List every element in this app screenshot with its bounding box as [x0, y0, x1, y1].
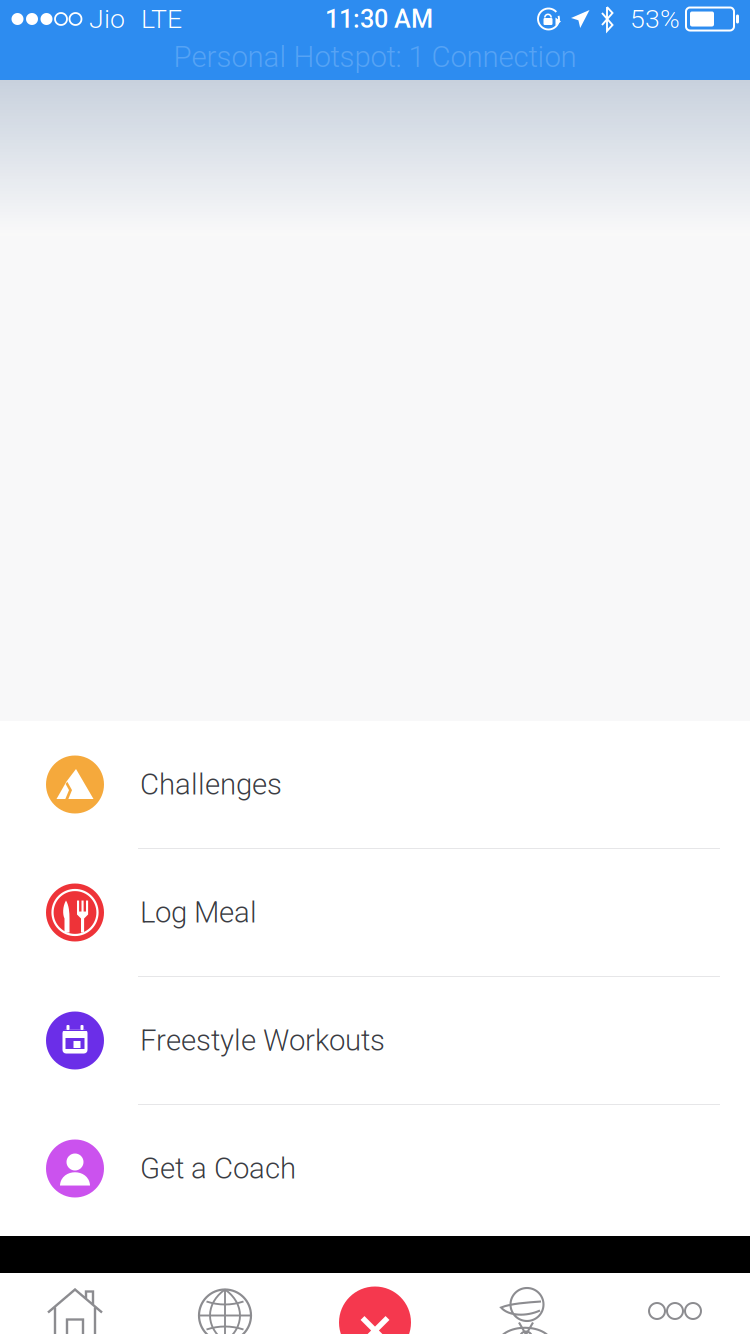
staticText: Get a Coach: [140, 1151, 296, 1186]
button[interactable]: More: [600, 1273, 750, 1334]
staticText: Challenges: [140, 767, 282, 802]
button[interactable]: Explore: [150, 1273, 300, 1334]
staticText: Log Meal: [140, 895, 257, 930]
button[interactable]: Freestyle Workouts: [0, 977, 750, 1105]
staticText: 53%: [630, 3, 680, 35]
button[interactable]: Home: [0, 1273, 150, 1334]
button[interactable]: Log Meal: [0, 849, 750, 977]
button[interactable]: Get a Coach: [0, 1105, 750, 1233]
staticText: 11:30 AM: [325, 4, 433, 34]
staticText: LTE: [141, 3, 182, 35]
button[interactable]: Challenges: [0, 721, 750, 849]
staticText: Jio: [89, 3, 125, 35]
staticText: Personal Hotspot: 1 Connection: [173, 40, 576, 74]
button[interactable]: Coach: [450, 1273, 600, 1334]
staticText: Freestyle Workouts: [140, 1023, 385, 1058]
button[interactable]: Close menu: [300, 1273, 450, 1334]
